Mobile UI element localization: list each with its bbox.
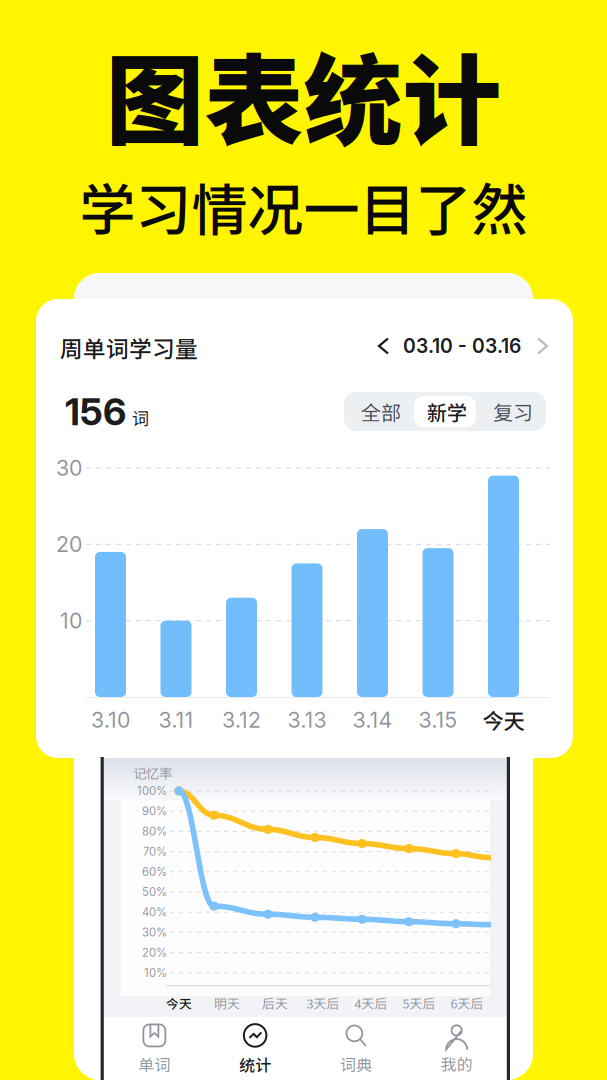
staticText: 3.10: [91, 707, 130, 733]
staticText: 我的: [441, 1052, 473, 1075]
staticText: 词: [132, 405, 149, 430]
staticText: 后天: [262, 994, 288, 1012]
button[interactable]: 新学: [0, 0, 607, 1080]
staticText: 新学: [427, 397, 467, 426]
staticText: 词典: [340, 1052, 372, 1076]
staticText: 100%: [137, 784, 167, 798]
staticText: 学习情况一目了然: [79, 165, 527, 247]
staticText: 20%: [142, 946, 167, 959]
button[interactable]: 统计: [0, 0, 607, 1080]
staticText: 03.10 - 03.16: [403, 334, 521, 358]
staticText: 统计: [239, 1053, 271, 1076]
staticText: 4天后: [354, 994, 387, 1012]
staticText: 80%: [142, 824, 167, 838]
button[interactable]: 复习: [0, 0, 607, 1080]
staticText: 20: [56, 531, 82, 557]
staticText: 周单词学习量: [60, 331, 198, 364]
button[interactable]: 我的: [0, 0, 607, 1080]
staticText: 60%: [142, 865, 167, 879]
staticText: 40%: [142, 905, 167, 919]
staticText: 30%: [142, 925, 167, 939]
staticText: 全部: [361, 397, 401, 426]
staticText: 10%: [144, 966, 167, 980]
staticText: 3.13: [287, 707, 326, 733]
button[interactable]: 全部: [0, 0, 607, 1080]
staticText: 3.11: [158, 707, 193, 733]
staticText: 70%: [143, 845, 167, 858]
staticText: 明天: [214, 994, 240, 1012]
button[interactable]: 单词: [0, 0, 607, 1080]
staticText: 6天后: [450, 994, 483, 1012]
button[interactable]: 03.10 - 03.16: [0, 0, 607, 1080]
staticText: 图表统计: [105, 23, 501, 165]
staticText: 3.14: [352, 707, 392, 733]
staticText: 今天: [482, 705, 524, 735]
staticText: 30: [56, 455, 82, 481]
staticText: 10: [60, 608, 82, 634]
staticText: 复习: [493, 397, 533, 426]
staticText: 单词: [138, 1052, 170, 1076]
staticText: 3.12: [222, 707, 261, 733]
staticText: 50%: [142, 885, 167, 899]
staticText: 5天后: [402, 994, 435, 1012]
staticText: 156: [65, 389, 126, 434]
staticText: 记忆率: [133, 763, 172, 782]
button[interactable]: 词典: [0, 0, 607, 1080]
staticText: 今天: [166, 994, 192, 1012]
staticText: 3.15: [418, 707, 457, 733]
staticText: 90%: [142, 804, 167, 818]
staticText: 3天后: [306, 994, 339, 1012]
